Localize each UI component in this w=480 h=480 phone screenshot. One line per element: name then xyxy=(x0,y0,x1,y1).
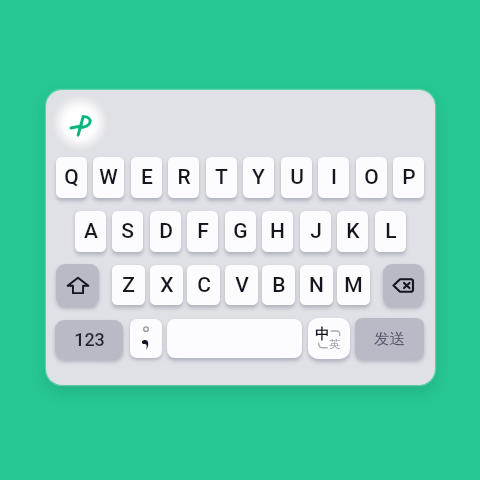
staticText: 中 xyxy=(315,325,330,343)
button[interactable]: A xyxy=(75,211,106,252)
staticText: H xyxy=(270,219,285,244)
staticText: O xyxy=(364,165,379,190)
staticText: B xyxy=(272,273,286,298)
staticText: I xyxy=(331,165,337,190)
button[interactable]: L xyxy=(375,211,406,252)
button[interactable]: J xyxy=(300,211,331,252)
staticText: C xyxy=(197,273,211,298)
button[interactable]: Comma xyxy=(130,319,162,358)
staticText: K xyxy=(346,219,360,244)
staticText: F xyxy=(197,219,209,244)
staticText: A xyxy=(84,219,98,244)
staticText: 123 xyxy=(74,329,105,350)
button[interactable]: Switch input language xyxy=(308,318,350,359)
staticText: J xyxy=(310,219,322,244)
button[interactable]: 发送 xyxy=(355,318,424,359)
button[interactable]: H xyxy=(262,211,293,252)
button[interactable]: Backspace xyxy=(383,264,424,306)
staticText: L xyxy=(385,219,397,244)
button[interactable]: App logo xyxy=(52,95,108,151)
button[interactable]: G xyxy=(225,211,256,252)
button[interactable]: P xyxy=(393,157,424,198)
staticText: Q xyxy=(64,165,79,190)
staticText: U xyxy=(290,165,304,190)
button[interactable]: W xyxy=(93,157,124,198)
button[interactable]: Q xyxy=(56,157,87,198)
button[interactable]: Y xyxy=(243,157,274,198)
staticText: Y xyxy=(252,165,265,190)
button[interactable]: I xyxy=(318,157,349,198)
button[interactable]: X xyxy=(150,265,183,305)
button[interactable]: E xyxy=(131,157,162,198)
button[interactable]: Shift xyxy=(56,264,99,306)
button[interactable]: V xyxy=(225,265,258,305)
staticText: 发送 xyxy=(374,329,405,349)
button[interactable]: D xyxy=(150,211,181,252)
staticText: G xyxy=(233,219,248,244)
button[interactable]: O xyxy=(356,157,387,198)
button[interactable]: K xyxy=(337,211,368,252)
staticText: Z xyxy=(122,273,135,298)
staticText: D xyxy=(159,219,173,244)
staticText: X xyxy=(160,273,174,298)
button[interactable]: R xyxy=(168,157,199,198)
button[interactable]: U xyxy=(281,157,312,198)
button[interactable]: 123 xyxy=(55,320,123,359)
button[interactable]: Space xyxy=(167,319,302,358)
button[interactable]: T xyxy=(206,157,237,198)
staticText: P xyxy=(402,165,416,190)
staticText: V xyxy=(235,273,249,298)
button[interactable]: F xyxy=(187,211,218,252)
staticText: E xyxy=(141,165,153,190)
staticText: 英 xyxy=(329,337,340,351)
staticText: W xyxy=(99,165,118,190)
staticText: S xyxy=(121,219,134,244)
staticText: N xyxy=(309,273,324,298)
staticText: T xyxy=(215,165,228,190)
staticText: R xyxy=(177,165,191,190)
button[interactable]: N xyxy=(300,265,333,305)
button[interactable]: Z xyxy=(112,265,145,305)
button[interactable]: C xyxy=(187,265,220,305)
staticText: M xyxy=(344,273,363,298)
button[interactable]: S xyxy=(112,211,143,252)
button[interactable]: B xyxy=(262,265,295,305)
button[interactable]: M xyxy=(337,265,370,305)
